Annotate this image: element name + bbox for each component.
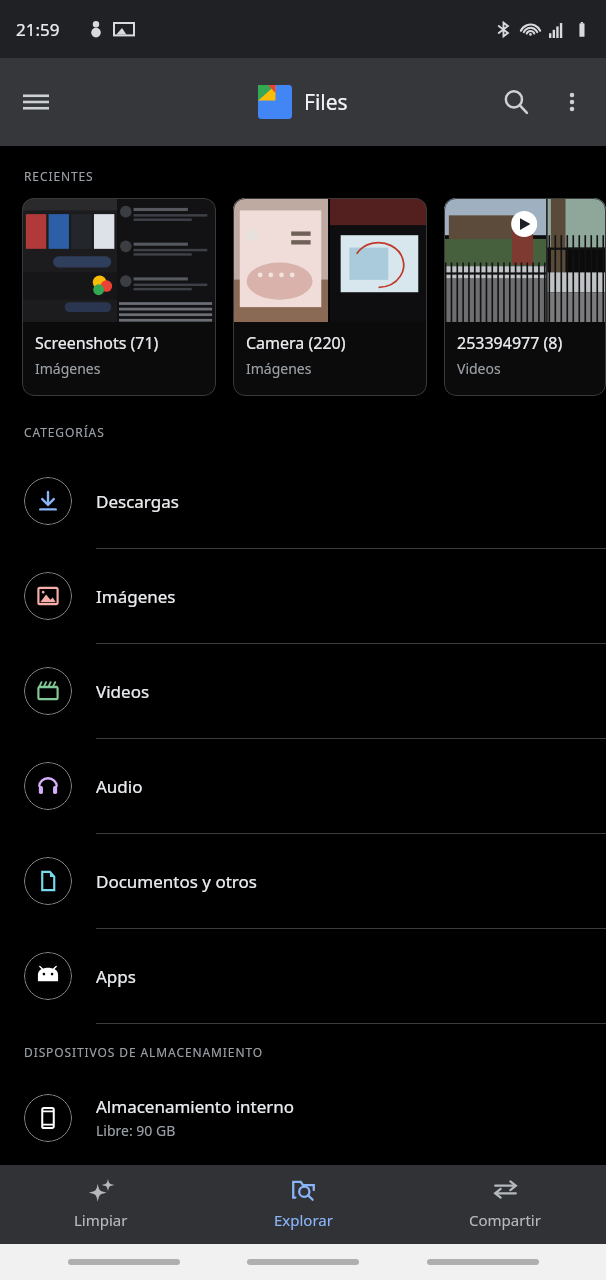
staticText: Explorar xyxy=(274,1210,333,1230)
button[interactable]: Videos xyxy=(0,644,606,739)
staticText: Compartir xyxy=(469,1210,541,1230)
staticText: Apps xyxy=(96,965,136,988)
staticText: Camera (220) xyxy=(246,332,346,354)
button[interactable]: Screenshots (71) xyxy=(22,198,216,396)
staticText: Videos xyxy=(96,680,150,703)
staticText: Documentos y otros xyxy=(96,870,257,893)
staticText: 253394977 (8) xyxy=(457,332,563,354)
staticText: Libre: 90 GB xyxy=(96,1121,176,1140)
staticText: Audio xyxy=(96,775,143,798)
button[interactable]: Camera (220) xyxy=(233,198,427,396)
staticText: Imágenes xyxy=(246,359,312,378)
button[interactable]: Menu xyxy=(8,74,64,130)
button[interactable]: 253394977 (8) xyxy=(444,198,606,396)
staticText: Descargas xyxy=(96,490,179,513)
staticText: CATEGORÍAS xyxy=(24,424,105,440)
button[interactable]: Limpiar xyxy=(0,1165,202,1230)
staticText: Files xyxy=(304,88,348,117)
staticText: DISPOSITIVOS DE ALMACENAMIENTO xyxy=(24,1044,264,1060)
staticText: Screenshots (71) xyxy=(35,332,159,354)
button[interactable]: Audio xyxy=(0,739,606,834)
staticText: Imágenes xyxy=(35,359,101,378)
staticText: 21:59 xyxy=(16,18,60,41)
button[interactable]: Explorar xyxy=(202,1165,404,1230)
staticText: Imágenes xyxy=(96,585,176,608)
staticText: Limpiar xyxy=(74,1210,128,1230)
button[interactable]: Descargas xyxy=(0,454,606,549)
button[interactable]: Search xyxy=(488,74,544,130)
button[interactable]: Compartir xyxy=(404,1165,606,1230)
button[interactable]: Almacenamiento interno xyxy=(0,1070,606,1165)
button[interactable]: Imágenes xyxy=(0,549,606,644)
staticText: RECIENTES xyxy=(24,168,94,184)
staticText: Videos xyxy=(457,359,501,378)
button[interactable]: Documentos y otros xyxy=(0,834,606,929)
button[interactable]: More options xyxy=(544,74,600,130)
button[interactable]: Apps xyxy=(0,929,606,1024)
staticText: Almacenamiento interno xyxy=(96,1095,295,1118)
